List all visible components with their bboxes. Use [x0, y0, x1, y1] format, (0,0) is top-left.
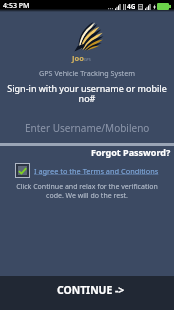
- button[interactable]: Forgot Password?: [91, 146, 174, 158]
- staticText: 4:53 PM: [3, 1, 30, 11]
- staticText: Joo: [72, 53, 84, 63]
- staticText: GPS: [84, 57, 91, 62]
- button[interactable]: I agree to the Terms and Conditions: [15, 163, 159, 178]
- staticText: Click Continue and relax for the verific…: [12, 182, 162, 200]
- staticText: Enter Username/Mobileno: [25, 121, 150, 135]
- staticText: Sign-in with your username or mobile no#: [4, 82, 170, 104]
- button[interactable]: CONTINUE ->: [0, 276, 174, 310]
- staticText: GPS Vehicle Tracking System: [0, 68, 174, 78]
- button[interactable]: Enter Username/Mobileno: [0, 116, 174, 140]
- staticText: 4G: [127, 2, 136, 11]
- staticText: CONTINUE ->: [57, 283, 125, 297]
- staticText: I agree to the Terms and Conditions: [34, 166, 159, 176]
